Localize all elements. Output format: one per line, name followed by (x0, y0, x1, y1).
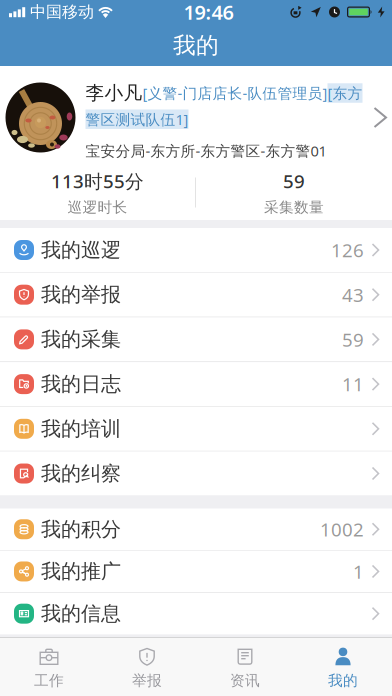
button[interactable]: 我的巡逻 (0, 228, 392, 272)
staticText: 资讯 (230, 671, 260, 689)
button[interactable]: 我的信息 (0, 593, 392, 634)
staticText: 我的推广 (41, 559, 121, 584)
button[interactable]: 我的 (294, 638, 392, 696)
staticText: 我的积分 (41, 517, 121, 542)
staticText: 我的 (328, 671, 358, 689)
staticText: 警区测试队伍1] (85, 109, 188, 129)
staticText: 我的采集 (41, 327, 121, 352)
staticText: 我的纠察 (41, 461, 121, 486)
staticText: 113时55分 (51, 169, 144, 193)
staticText: 59 (283, 169, 305, 193)
staticText: 巡逻时长 (67, 198, 127, 216)
staticText: 采集数量 (264, 198, 324, 216)
staticText: [东方 (327, 83, 362, 103)
staticText: 我的举报 (41, 282, 121, 307)
staticText: 11 (342, 372, 364, 396)
button[interactable]: 我的积分 (0, 508, 392, 550)
button[interactable]: 资讯 (196, 638, 294, 696)
staticText: 我的日志 (41, 372, 121, 396)
button[interactable]: 工作 (0, 638, 98, 696)
staticText: 宝安分局-东方所-东方警区-东方警01 (85, 141, 326, 160)
staticText: 1002 (320, 517, 364, 542)
staticText: 我的巡逻 (41, 238, 121, 262)
staticText: 1 (353, 559, 364, 584)
button[interactable]: 举报 (98, 638, 196, 696)
staticText: [义警-门店店长-队伍管理员] (142, 83, 327, 103)
button[interactable]: 我的培训 (0, 407, 392, 451)
staticText: 19:46 (183, 0, 233, 25)
staticText: 我的信息 (41, 601, 121, 626)
button[interactable]: 我的日志 (0, 362, 392, 406)
button[interactable]: 我的举报 (0, 273, 392, 317)
staticText: 我的培训 (41, 416, 121, 441)
staticText: 126 (331, 238, 364, 262)
staticText: 中国移动 (30, 2, 94, 22)
button[interactable]: 李小凡 (0, 66, 392, 169)
staticText: 李小凡 (85, 82, 142, 104)
button[interactable]: 我的采集 (0, 317, 392, 361)
button[interactable]: 我的纠察 (0, 451, 392, 495)
staticText: 我的 (173, 32, 219, 59)
button[interactable]: 我的推广 (0, 551, 392, 592)
staticText: 59 (342, 327, 364, 352)
staticText: 工作 (34, 671, 64, 689)
staticText: 举报 (132, 671, 162, 689)
staticText: 43 (342, 282, 364, 307)
